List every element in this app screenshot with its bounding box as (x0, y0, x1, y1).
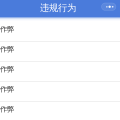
staticText: 作弊 (0, 84, 14, 94)
staticText: 作弊 (0, 44, 14, 54)
button[interactable]: 作弊 (0, 82, 120, 102)
staticText: 违规行为 (40, 2, 76, 14)
button[interactable]: 作弊 (0, 22, 120, 42)
button[interactable]: 作弊 (0, 42, 120, 62)
staticText: 作弊 (0, 104, 14, 114)
button[interactable]: 作弊 (0, 62, 120, 82)
staticText: 作弊 (0, 24, 14, 34)
staticText: 作弊 (0, 64, 14, 74)
button[interactable]: More (101, 3, 116, 10)
button[interactable]: 作弊 (0, 102, 120, 120)
